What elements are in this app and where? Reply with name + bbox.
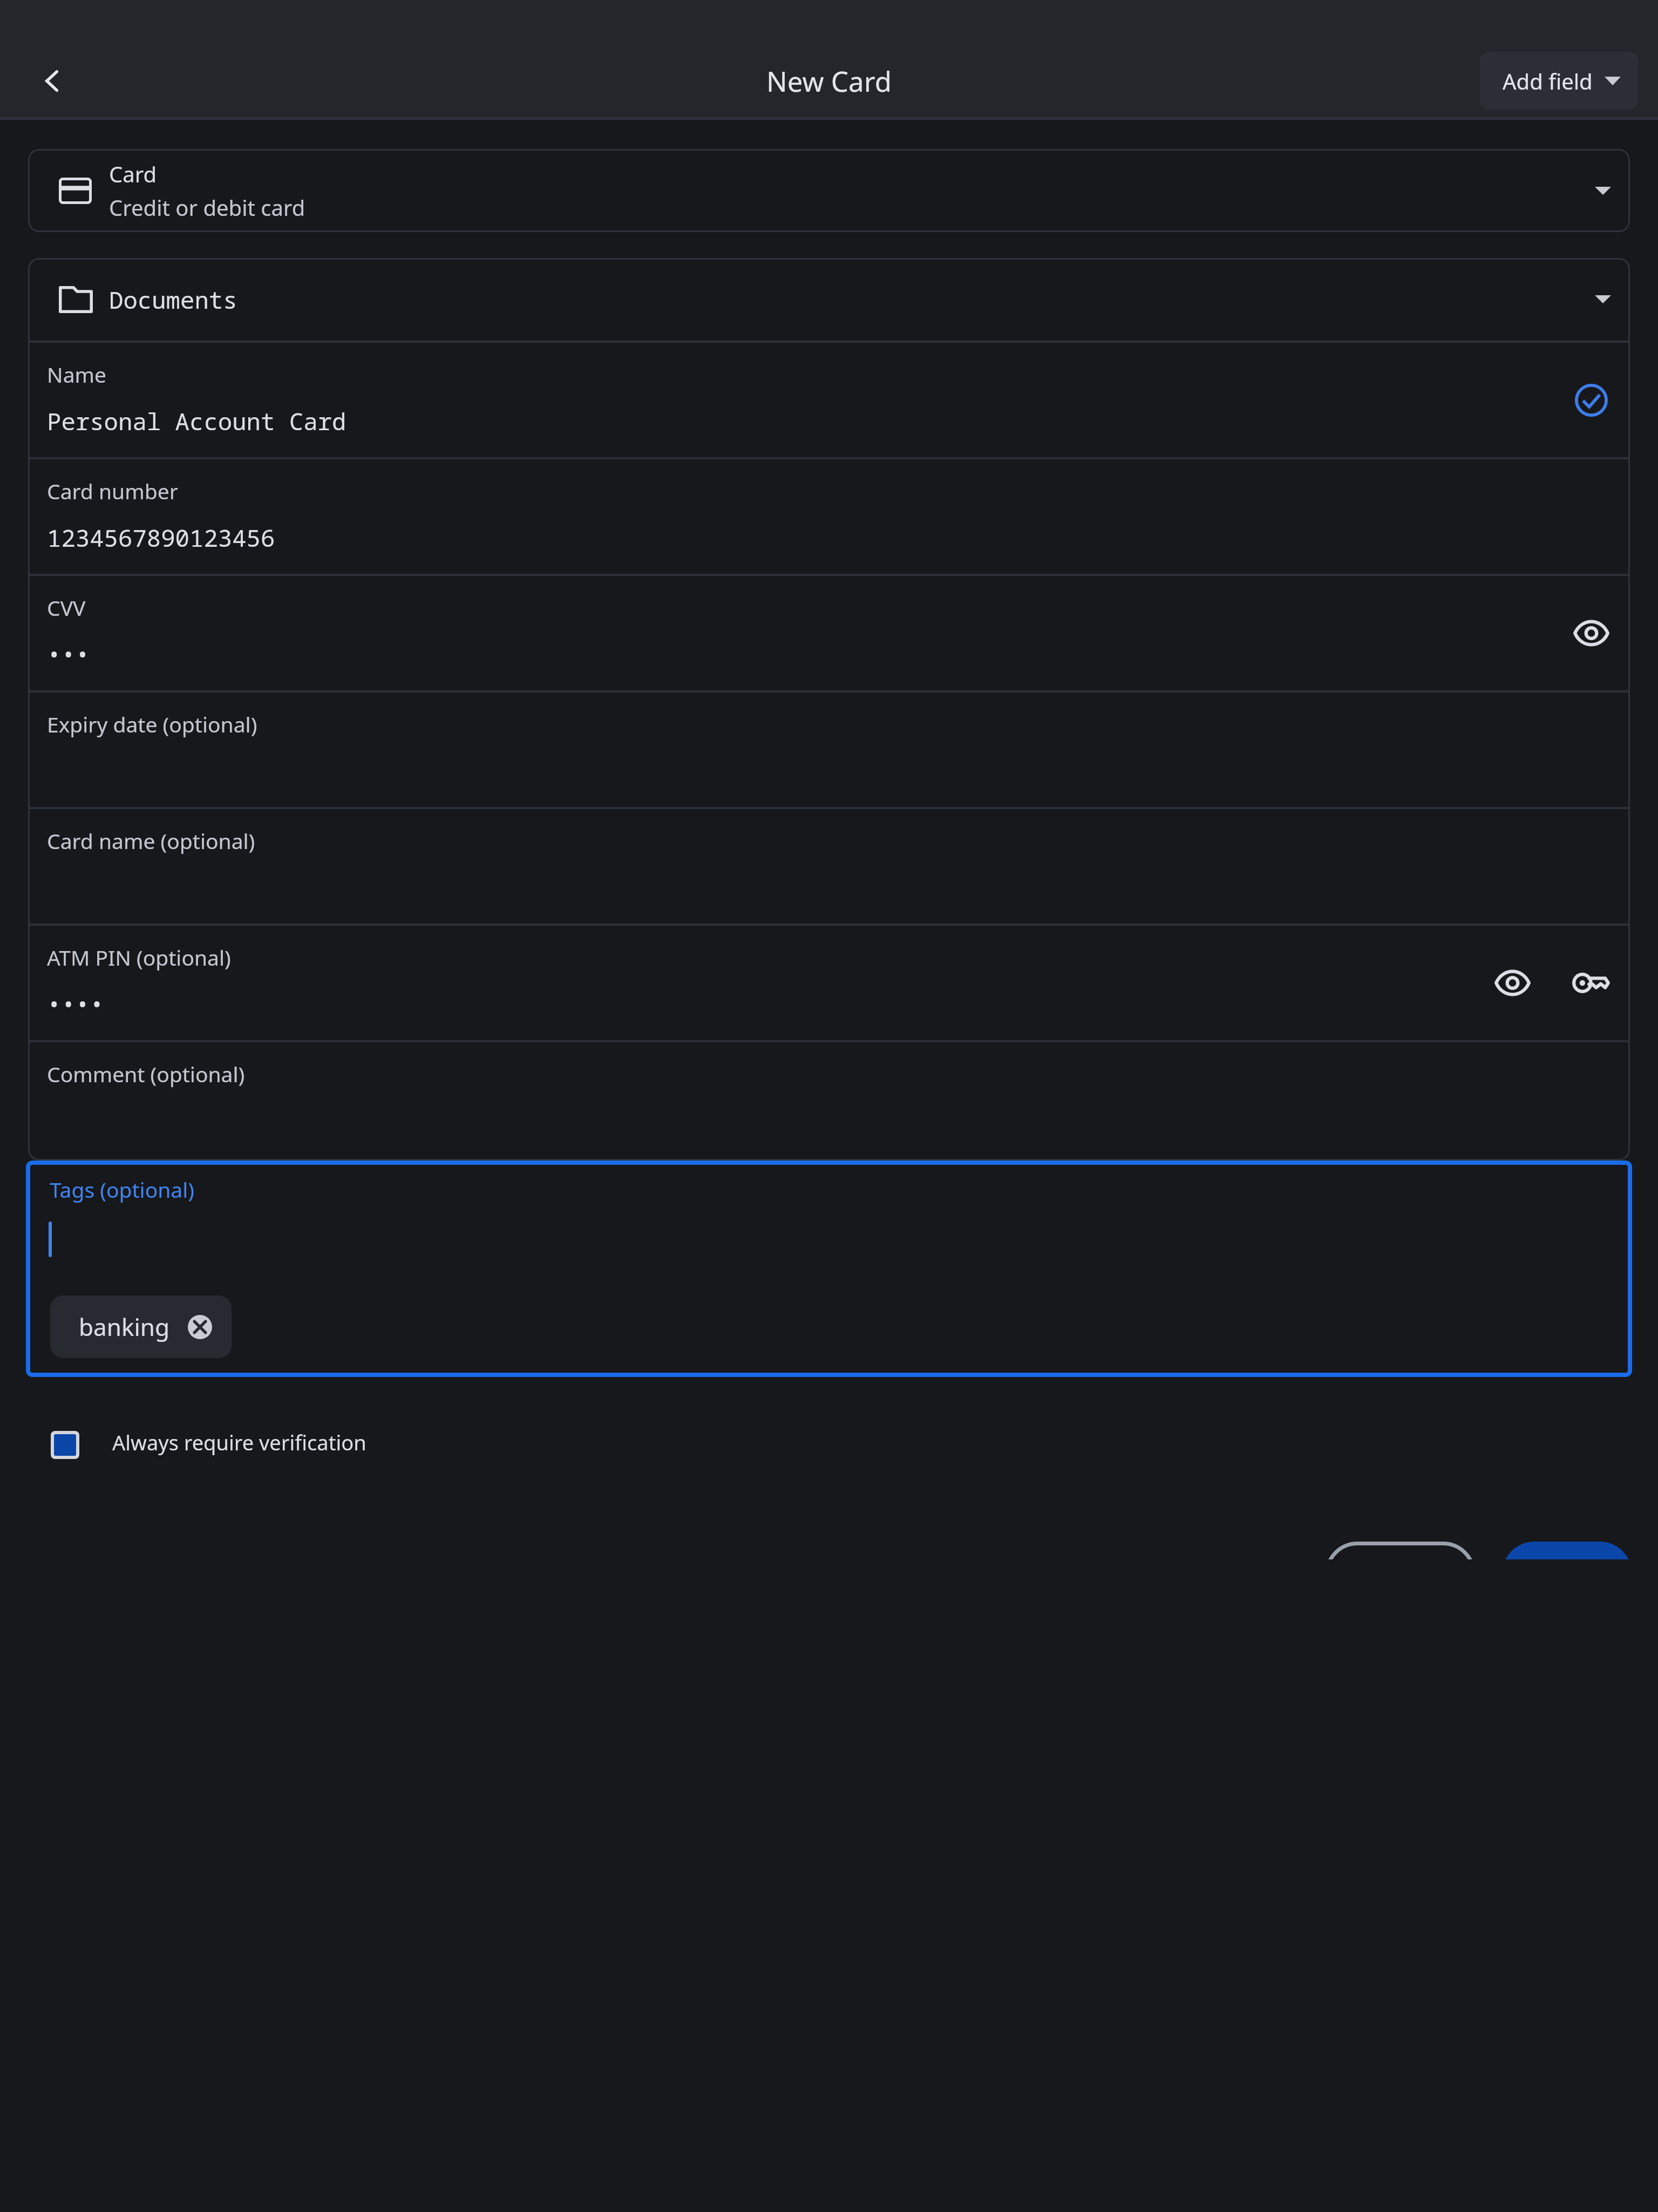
button[interactable]: Show value [1561,603,1621,663]
button[interactable]: Cancel [1325,1542,1476,1559]
button[interactable]: Back [21,50,83,112]
button[interactable]: Always require verification [51,1431,366,1459]
staticText: Card [109,159,157,188]
button[interactable]: banking [50,1295,232,1358]
staticText: Card number [47,477,178,505]
button[interactable]: Comment (optional) [28,1042,1630,1161]
button[interactable]: Verified [1561,370,1621,430]
button[interactable]: Add field [1480,52,1638,110]
staticText: Card name (optional) [47,826,255,855]
staticText: banking [79,1311,170,1343]
staticText: Comment (optional) [47,1060,245,1088]
button[interactable]: Card name (optional) [28,809,1630,924]
staticText: Expiry date (optional) [47,710,257,738]
staticText: Name [47,360,106,389]
staticText: ATM PIN (optional) [47,943,231,972]
staticText: CVV [47,593,86,622]
staticText: •••• [47,988,104,1020]
staticText: Always require verification [112,1428,366,1456]
staticText: Tags (optional) [50,1175,195,1204]
staticText: New Card [766,62,892,99]
button[interactable]: Expiry date (optional) [28,693,1630,807]
button[interactable]: Documents [28,258,1630,341]
button[interactable]: Generate password [1561,953,1621,1013]
staticText: Personal Account Card [47,405,346,437]
staticText: ••• [47,638,90,670]
staticText: Add field [1503,66,1593,96]
button[interactable]: Show value [1483,953,1542,1013]
staticText: 1234567890123456 [47,521,275,554]
button[interactable]: CVV [28,576,1630,690]
button[interactable]: Card number [28,459,1630,574]
button[interactable]: Tags (optional) [26,1161,1632,1377]
button[interactable]: Save [1502,1542,1632,1559]
button[interactable]: ATM PIN (optional) [28,926,1630,1040]
staticText: Documents [109,283,237,316]
button[interactable]: Card [28,149,1630,232]
staticText: Credit or debit card [109,193,305,222]
button[interactable]: Name [28,343,1630,457]
